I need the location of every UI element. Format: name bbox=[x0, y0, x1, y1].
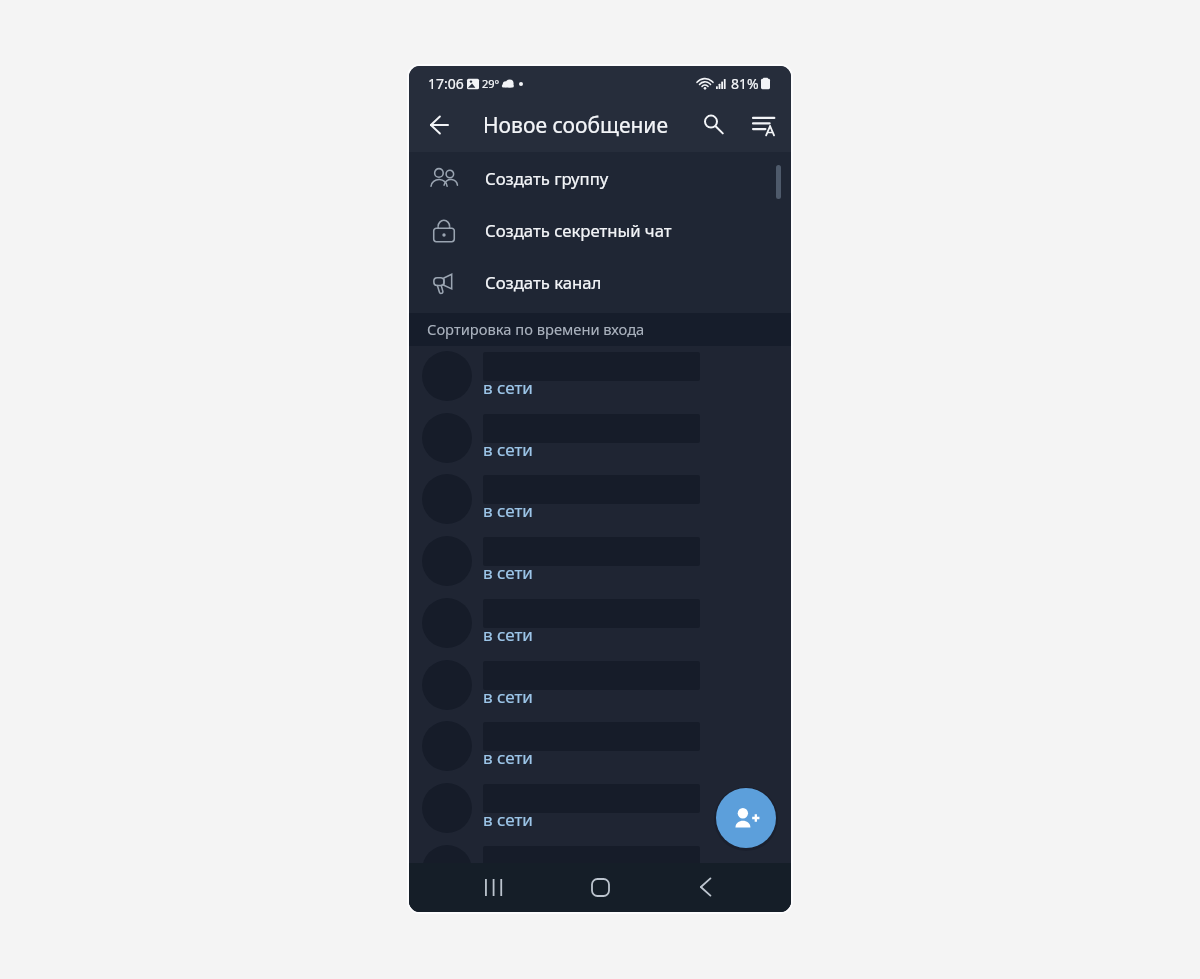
button[interactable]: Sort bbox=[741, 104, 785, 148]
button[interactable]: в сети bbox=[409, 345, 791, 407]
button[interactable]: Search bbox=[692, 104, 736, 148]
button[interactable]: в сети bbox=[409, 839, 791, 901]
button[interactable]: в сети bbox=[409, 468, 791, 530]
staticText: в сети bbox=[483, 561, 533, 584]
button[interactable]: Back bbox=[417, 104, 461, 148]
staticText: в сети bbox=[483, 685, 533, 708]
staticText: 81% bbox=[731, 74, 759, 93]
button[interactable]: в сети bbox=[409, 777, 791, 839]
button[interactable]: в сети bbox=[409, 654, 791, 716]
staticText: 17:06 bbox=[428, 74, 464, 93]
button[interactable]: в сети bbox=[409, 592, 791, 654]
staticText: в сети bbox=[483, 870, 533, 893]
staticText: Создать группу bbox=[485, 167, 609, 190]
staticText: в сети bbox=[483, 746, 533, 769]
staticText: Сортировка по времени входа bbox=[427, 319, 645, 339]
button[interactable]: в сети bbox=[409, 530, 791, 592]
button[interactable]: Back bbox=[681, 864, 729, 912]
button[interactable]: Создать канал bbox=[409, 256, 791, 308]
button[interactable]: Создать группу bbox=[409, 152, 791, 204]
staticText: в сети bbox=[483, 499, 533, 522]
button[interactable]: Recents bbox=[469, 864, 517, 912]
staticText: 29° bbox=[482, 76, 500, 91]
staticText: в сети bbox=[483, 623, 533, 646]
button[interactable]: Add contact bbox=[716, 788, 776, 848]
staticText: Создать канал bbox=[485, 271, 602, 294]
button[interactable]: в сети bbox=[409, 900, 791, 912]
button[interactable]: в сети bbox=[409, 407, 791, 469]
staticText: Создать секретный чат bbox=[485, 219, 672, 242]
staticText: в сети bbox=[483, 808, 533, 831]
staticText: Новое сообщение bbox=[483, 111, 668, 140]
button[interactable]: в сети bbox=[409, 715, 791, 777]
button[interactable]: Создать секретный чат bbox=[409, 204, 791, 256]
staticText: в сети bbox=[483, 438, 533, 461]
staticText: в сети bbox=[483, 376, 533, 399]
button[interactable]: Home bbox=[576, 863, 624, 911]
